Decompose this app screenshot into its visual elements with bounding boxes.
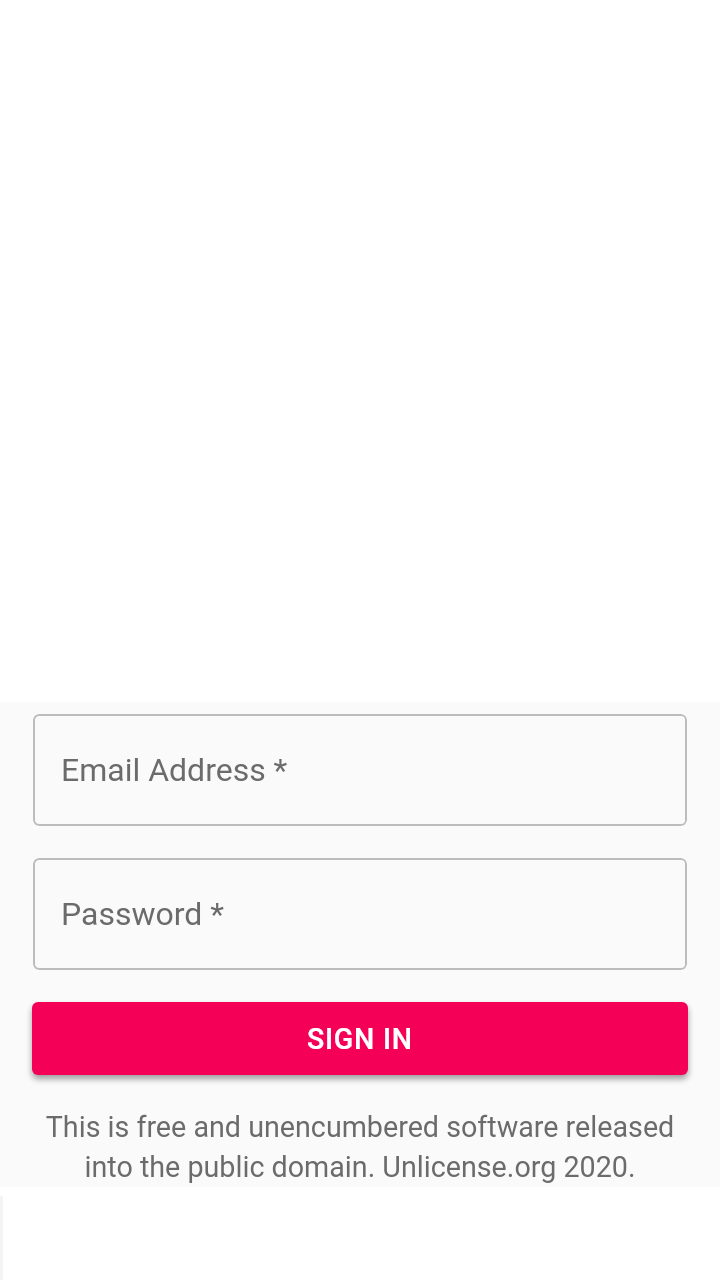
staticText: This is free and unencumbered software r…: [33, 1110, 687, 1184]
button[interactable]: SIGN IN: [32, 1002, 688, 1075]
staticText: Email Address *: [61, 751, 288, 789]
staticText: Password *: [61, 895, 225, 933]
staticText: SIGN IN: [307, 1022, 413, 1056]
button[interactable]: Password *: [33, 858, 687, 970]
button[interactable]: Email Address *: [33, 714, 687, 826]
